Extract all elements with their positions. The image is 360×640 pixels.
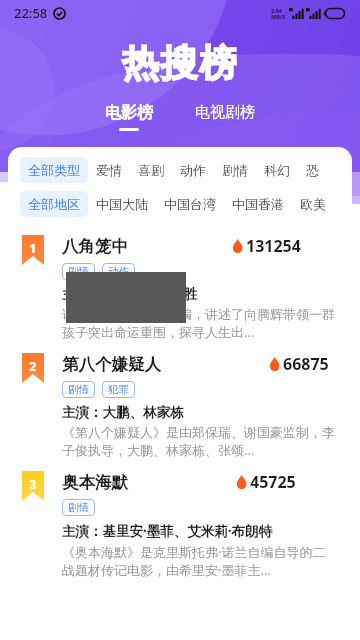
staticText: 热搜榜 [122,40,238,87]
staticText: 22:58 [14,4,48,22]
button[interactable]: 剧情 [62,499,95,516]
other: 热度 [269,357,280,371]
staticText: 主演：大鹏、林家栋 [62,404,184,421]
staticText: 全部地区 [28,196,80,212]
staticText: 《第八个嫌疑人》是由郑保瑞、谢国豪监制，李子俊执导，大鹏、林家栋、张颂… [62,424,338,459]
button[interactable]: 科幻 [256,157,298,183]
staticText: 喜剧 [138,162,164,178]
button[interactable]: 电影榜 [97,101,161,133]
staticText: 八角笼中 [62,236,128,257]
button[interactable]: 中国香港 [224,191,292,217]
staticText: 1 [29,239,37,257]
staticText: 全部类型 [28,162,80,178]
staticText: 中国大陆 [96,196,148,212]
staticText: 电影榜 [105,103,153,123]
staticText: 犯罪 [108,383,129,396]
staticText: 2.94 MB/S [271,7,286,20]
button[interactable]: 恐 [298,157,327,183]
staticText: 欧美 [300,196,326,212]
staticText: 动作 [108,265,129,278]
staticText: 恐 [306,162,319,178]
staticText: 中国香港 [232,196,284,212]
staticText: 爱情 [96,162,122,178]
other: 热度 [236,475,247,489]
button[interactable]: 喜剧 [130,157,172,183]
staticText: 电视剧榜 [195,103,255,122]
staticText: 主演：王宝强、陈永胜 [62,286,197,303]
button[interactable]: 中国大陆 [88,191,156,217]
staticText: 该片根据真实事件改编，讲述了向腾辉带领一群孩子突出命运重围，探寻人生出… [62,306,338,341]
button[interactable]: 全部类型 [20,157,88,183]
button[interactable]: 剧情 [214,157,256,183]
button[interactable]: 爱情 [88,157,130,183]
button[interactable]: 2 [8,349,352,467]
button[interactable]: 欧美 [292,191,334,217]
button[interactable]: 3 [8,467,352,587]
button[interactable]: 剧情 [62,381,95,398]
staticText: 中国台湾 [164,196,216,212]
staticText: 45725 [250,471,296,493]
button[interactable]: 犯罪 [102,381,135,398]
button[interactable]: 动作 [172,157,214,183]
staticText: 剧情 [68,265,89,278]
other: 热度 [232,239,243,253]
staticText: 3 [29,475,37,493]
button[interactable]: 1 [8,231,352,349]
button[interactable]: 电视剧榜 [187,101,263,132]
staticText: 奥本海默 [62,472,128,493]
staticText: 剧情 [222,162,248,178]
staticText: 131254 [246,235,301,257]
staticText: 2 [29,357,37,375]
button[interactable]: 中国台湾 [156,191,224,217]
staticText: 主演：基里安·墨菲、艾米莉·布朗特 [62,522,273,540]
staticText: 剧情 [68,501,89,514]
staticText: 《奥本海默》是克里斯托弗·诺兰自编自导的二战题材传记电影，由希里安·墨菲主… [62,543,338,579]
button[interactable]: 剧情 [62,263,95,280]
button[interactable]: 动作 [102,263,135,280]
staticText: 66875 [283,353,329,375]
staticText: 动作 [180,162,206,178]
button[interactable]: 全部地区 [20,191,88,217]
staticText: 第八个嫌疑人 [62,354,161,375]
staticText: 剧情 [68,383,89,396]
staticText: 科幻 [264,162,290,178]
